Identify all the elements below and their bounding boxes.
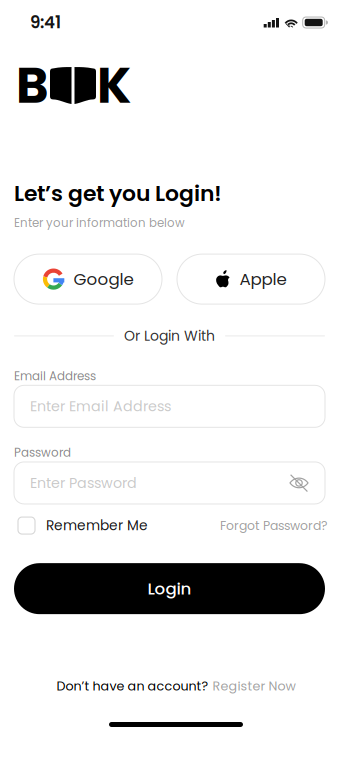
button[interactable]: Google	[14, 254, 162, 304]
staticText: Google	[73, 267, 133, 291]
staticText: Remember Me	[46, 516, 148, 535]
staticText: Register Now	[212, 677, 295, 695]
staticText: Login	[147, 577, 191, 600]
staticText: B	[16, 51, 49, 120]
button[interactable]: Don’t have an account?	[56, 677, 295, 695]
staticText: Forgot Password?	[220, 517, 327, 534]
button[interactable]: Show password	[289, 474, 309, 492]
button[interactable]: Forgot Password?	[220, 517, 327, 534]
staticText: K	[97, 51, 131, 120]
staticText: Let’s get you Login!	[14, 178, 222, 209]
staticText: Enter your information below	[14, 215, 185, 231]
button[interactable]: Login	[14, 563, 325, 614]
staticText: Or Login With	[124, 326, 215, 346]
staticText: Apple	[239, 267, 286, 291]
staticText: Don’t have an account?	[56, 677, 208, 695]
staticText: Password	[14, 444, 71, 461]
staticText: Enter Password	[30, 473, 137, 493]
staticText: Email Address	[14, 368, 96, 384]
staticText: 9:41	[30, 11, 61, 34]
button[interactable]: Apple	[177, 254, 325, 304]
staticText: Enter Email Address	[30, 396, 171, 416]
button[interactable]: Remember Me	[18, 516, 148, 535]
